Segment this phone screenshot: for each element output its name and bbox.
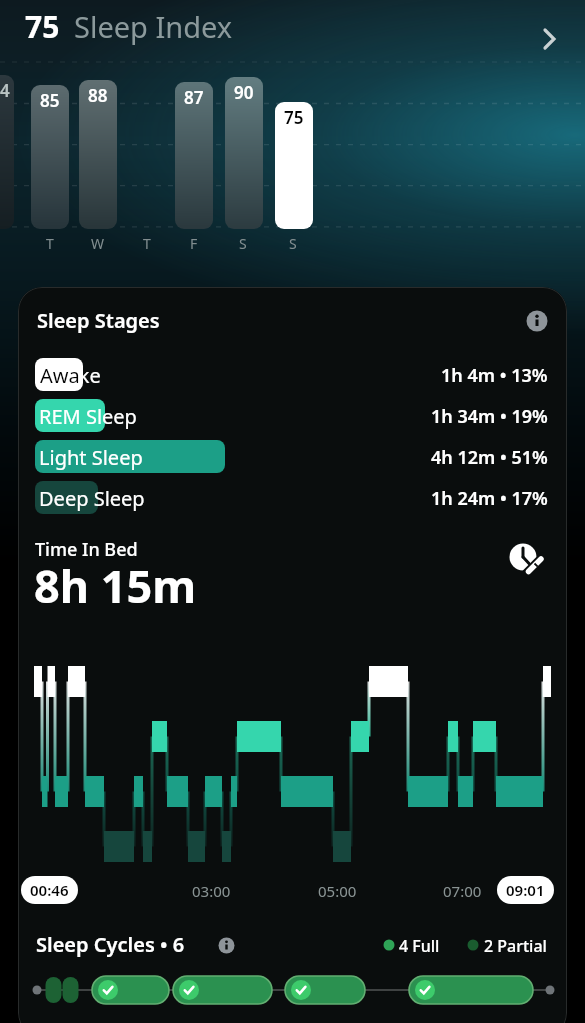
staticText: W [91,234,105,253]
staticText: Sleep Index [74,7,233,46]
staticText: T [46,234,54,253]
staticText: Awake [39,362,101,389]
staticText: 4 Full [399,935,440,957]
staticText: Sleep Stages [37,307,160,334]
button[interactable] [218,937,235,954]
button[interactable]: 00:46 [21,876,78,904]
button[interactable]: 75 [0,0,585,58]
staticText: 85 [40,89,60,112]
staticText: 8h 15m [34,555,197,616]
staticText: 90 [234,81,254,104]
staticText: 4 [0,79,10,102]
staticText: 2 Partial [484,935,547,957]
staticText: Sleep Cycles • 6 [36,931,185,958]
staticText: 1h 4m • 13% [441,363,548,388]
staticText: 1h 24m • 17% [431,486,548,511]
staticText: 07:00 [443,881,482,901]
staticText: F [190,234,198,253]
staticText: 03:00 [192,881,231,901]
staticText: 09:01 [506,880,545,900]
staticText: 4h 12m • 51% [431,445,548,470]
staticText: 88 [88,84,108,107]
staticText: S [289,234,297,253]
staticText: S [239,234,247,253]
staticText: Time In Bed [35,537,138,562]
staticText: Deep Sleep [39,485,145,512]
staticText: T [143,234,151,253]
staticText: Awake [40,362,83,391]
staticText: 87 [184,86,204,109]
staticText: 00:46 [30,880,69,900]
staticText: 75 [284,106,304,129]
button[interactable] [526,310,548,332]
button[interactable]: 09:01 [497,876,554,904]
staticText: Light Sleep [39,444,143,471]
button[interactable] [510,539,554,583]
staticText: REM Sleep [39,403,137,430]
staticText: 05:00 [318,881,357,901]
staticText: 1h 34m • 19% [431,404,548,429]
staticText: 75 [25,6,60,47]
